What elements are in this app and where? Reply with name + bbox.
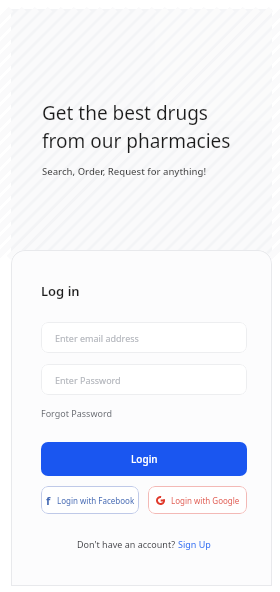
button[interactable]: Enter Password — [41, 364, 247, 395]
button[interactable]: Forgot Password — [41, 406, 113, 420]
staticText: Login with Facebook — [57, 495, 135, 506]
staticText: from our pharmacies — [42, 128, 231, 154]
staticText: Sign Up — [178, 538, 211, 550]
staticText: Log in — [41, 282, 80, 300]
staticText: Login — [131, 452, 158, 466]
staticText: Enter Password — [55, 374, 121, 386]
button[interactable]: Login — [41, 442, 247, 476]
staticText: f — [46, 493, 51, 508]
button[interactable]: f — [41, 486, 139, 514]
staticText: Enter email address — [55, 332, 139, 344]
other: Google — [156, 496, 165, 505]
staticText: Login with Google — [171, 495, 240, 506]
staticText: Search, Order, Request for anything! — [42, 165, 206, 178]
staticText: Get the best drugs — [42, 100, 208, 126]
button[interactable]: Enter email address — [41, 322, 247, 353]
staticText: Forgot Password — [41, 407, 113, 419]
staticText: Don't have an account? — [77, 538, 178, 550]
button[interactable]: Google — [148, 486, 247, 514]
button[interactable]: Sign Up — [178, 538, 211, 550]
